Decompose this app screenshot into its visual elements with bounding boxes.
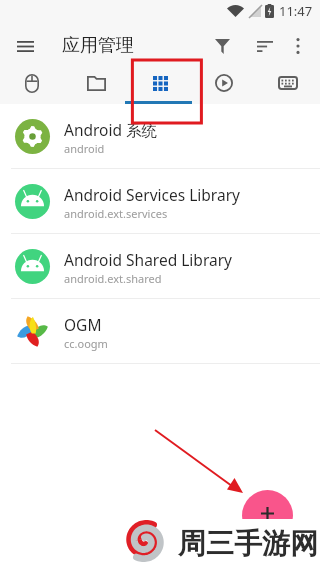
staticText: 11:47	[279, 2, 313, 20]
staticText: OGM	[64, 314, 102, 335]
button[interactable]: Filter	[197, 29, 248, 63]
staticText: Android Services Library	[64, 184, 240, 205]
staticText: android	[64, 141, 105, 156]
button[interactable]: Android 系统	[0, 104, 320, 168]
staticText: android.ext.services	[64, 206, 168, 221]
button[interactable]: OGM	[0, 299, 320, 363]
staticText: 应用管理	[62, 34, 134, 57]
button[interactable]: Keyboard	[256, 62, 320, 104]
staticText: cc.oogm	[64, 336, 108, 351]
staticText: 周三手游网	[178, 526, 318, 561]
button[interactable]: Sort	[248, 29, 281, 63]
button[interactable]: Media	[192, 62, 256, 104]
staticText: Android Shared Library	[64, 249, 232, 270]
staticText: android.ext.shared	[64, 271, 162, 286]
button[interactable]: Add	[242, 490, 293, 541]
button[interactable]: Pointer	[0, 62, 64, 104]
button[interactable]: Menu	[10, 31, 40, 61]
staticText: Android 系统	[64, 119, 158, 140]
button[interactable]: Android Shared Library	[0, 234, 320, 298]
button[interactable]: Android Services Library	[0, 169, 320, 233]
button[interactable]: Files	[64, 62, 128, 104]
button[interactable]: More options	[281, 29, 315, 63]
button[interactable]: Apps	[128, 62, 192, 104]
